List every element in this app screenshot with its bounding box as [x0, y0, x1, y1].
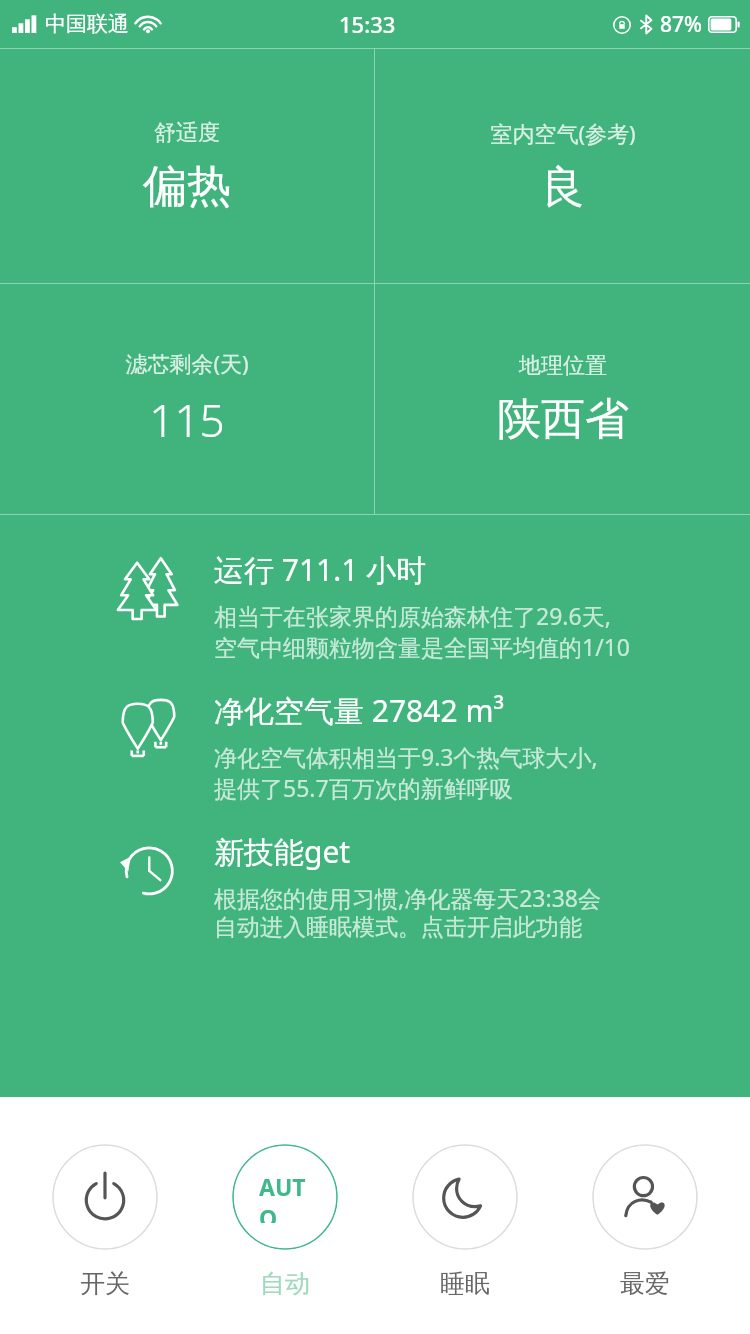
staticText: 相当于在张家界的原始森林住了29.6天, [214, 600, 611, 631]
staticText: AUTO [259, 1171, 311, 1223]
staticText: 运行 711.1 小时 [214, 549, 427, 590]
staticText: 舒适度 [154, 119, 220, 147]
staticText: 提供了55.7百万次的新鲜呼吸 [214, 772, 513, 803]
button[interactable]: 运行 711.1 小时 [0, 549, 750, 662]
staticText: 净化空气体积相当于9.3个热气球大小, [214, 741, 598, 772]
button[interactable]: 最爱 [570, 1097, 720, 1299]
staticText: 87% [660, 10, 702, 39]
button[interactable]: 开关 [30, 1097, 180, 1299]
staticText: 滤芯剩余(天) [125, 348, 249, 378]
button[interactable]: 自动 [210, 1097, 360, 1299]
staticText: 自动 [260, 1268, 310, 1299]
button[interactable]: 滤芯剩余(天) [0, 284, 374, 514]
button[interactable]: 地理位置 [375, 284, 750, 514]
button[interactable]: 室内空气(参考) [375, 49, 750, 283]
staticText: 良 [541, 160, 585, 215]
button[interactable]: 净化空气量 27842 m³ [0, 690, 750, 803]
staticText: 最爱 [620, 1268, 670, 1299]
staticText: 睡眠 [440, 1268, 490, 1299]
staticText: 开关 [80, 1268, 130, 1299]
staticText: 15:33 [339, 9, 396, 39]
staticText: 115 [149, 390, 225, 450]
staticText: 陕西省 [497, 392, 629, 447]
button[interactable]: 舒适度 [0, 49, 374, 283]
staticText: 室内空气(参考) [490, 118, 636, 148]
button[interactable]: 睡眠 [390, 1097, 540, 1299]
staticText: 新技能get [214, 831, 351, 872]
button[interactable]: 新技能get [0, 831, 750, 942]
staticText: 净化空气量 27842 m³ [214, 690, 504, 731]
staticText: 根据您的使用习惯,净化器每天23:38会 [214, 882, 601, 913]
staticText: 偏热 [143, 159, 231, 214]
staticText: 地理位置 [519, 352, 607, 380]
staticText: 空气中细颗粒物含量是全国平均值的1/10 [214, 631, 631, 662]
staticText: 中国联通 [45, 11, 129, 37]
staticText: 自动进入睡眠模式。点击开启此功能 [214, 913, 582, 942]
